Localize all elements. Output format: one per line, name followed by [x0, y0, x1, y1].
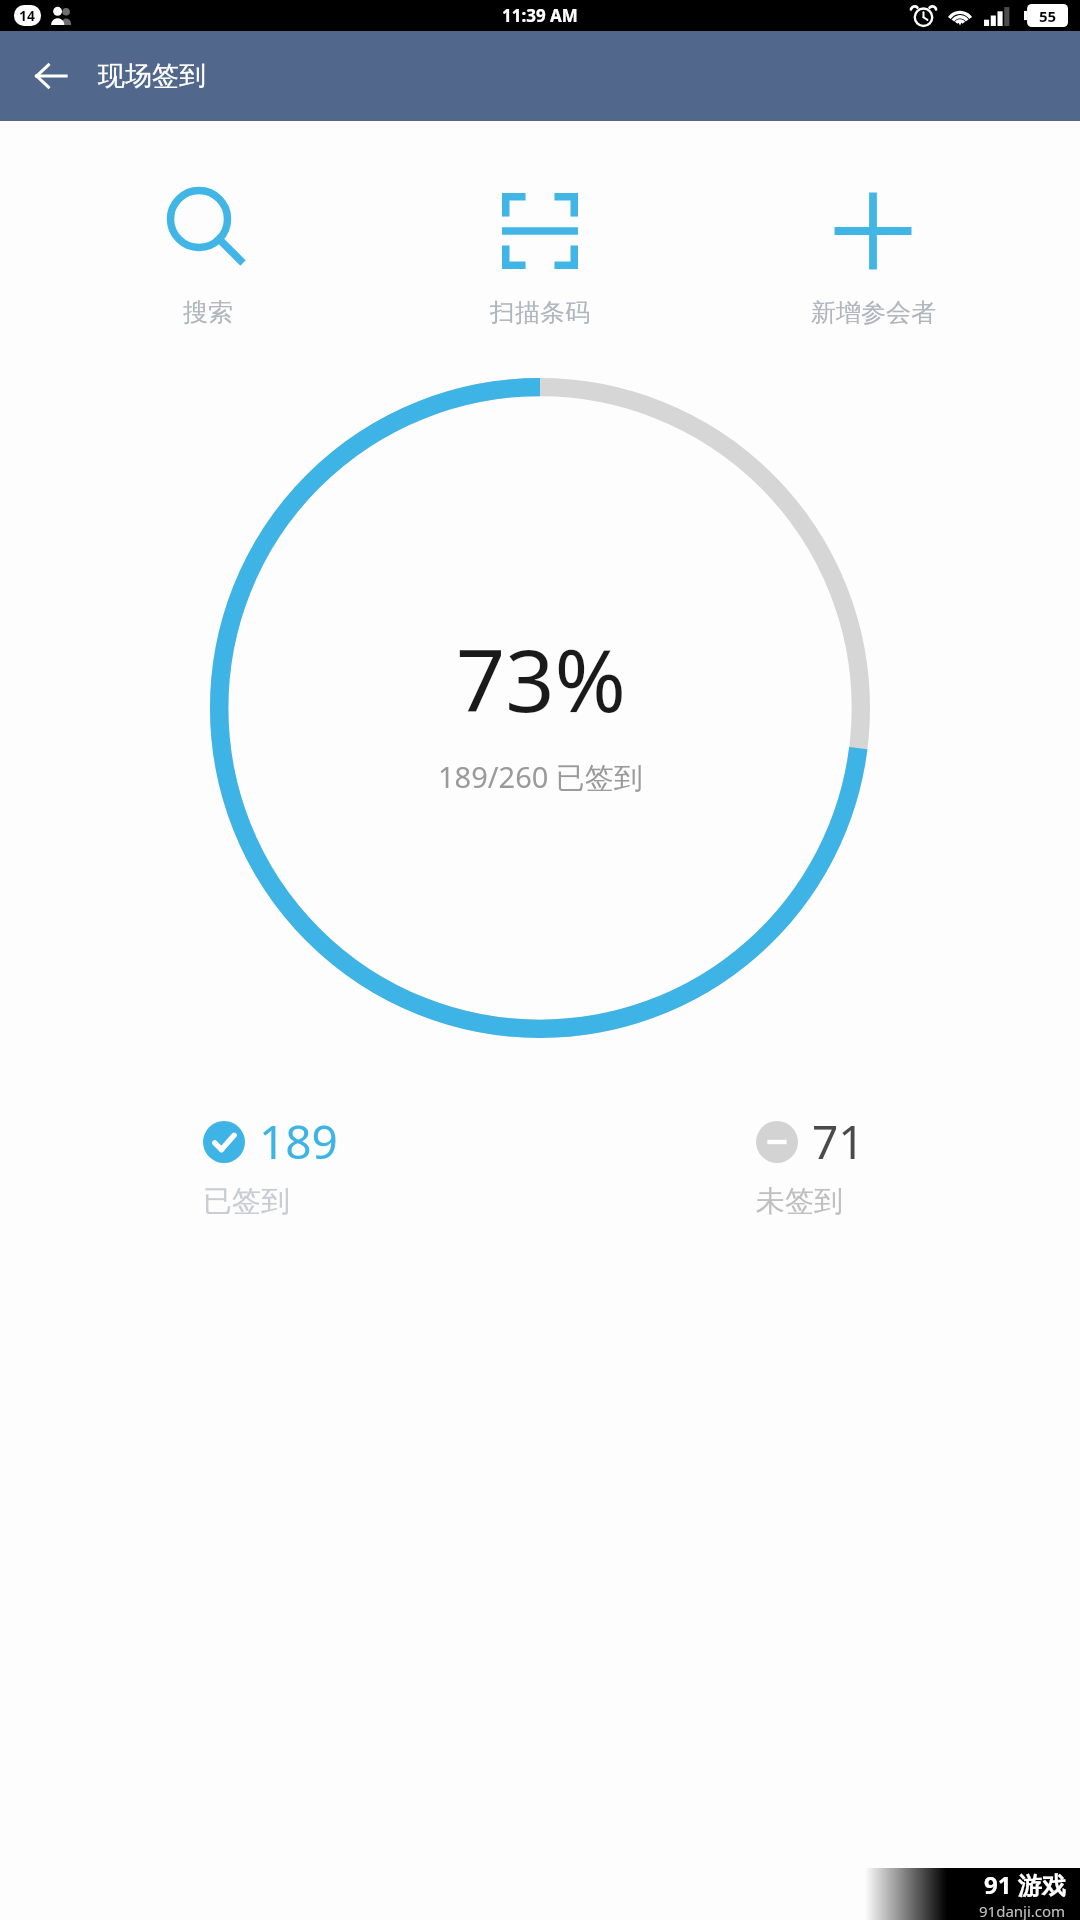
- button[interactable]: 扫描条码: [415, 173, 665, 334]
- staticText: 189/260 已签到: [438, 757, 643, 797]
- staticText: 189: [259, 1110, 338, 1173]
- staticText: 14: [19, 6, 36, 25]
- staticText: 扫描条码: [490, 297, 590, 328]
- staticText: 91danji.com: [979, 1901, 1066, 1920]
- button[interactable]: Back: [20, 45, 82, 107]
- staticText: 新增参会者: [811, 297, 936, 328]
- button[interactable]: 搜索: [83, 173, 333, 334]
- staticText: 91 游戏: [984, 1868, 1066, 1901]
- button[interactable]: 189: [195, 1106, 346, 1224]
- staticText: 未签到: [756, 1183, 843, 1220]
- staticText: 71: [812, 1110, 865, 1173]
- staticText: 73%: [456, 620, 626, 737]
- staticText: 现场签到: [98, 59, 206, 93]
- staticText: 已签到: [203, 1183, 290, 1220]
- button[interactable]: 新增参会者: [748, 173, 998, 334]
- staticText: 55: [1039, 6, 1057, 26]
- staticText: 搜索: [183, 297, 233, 328]
- button[interactable]: 71: [748, 1106, 873, 1224]
- staticText: 11:39 AM: [502, 4, 578, 27]
